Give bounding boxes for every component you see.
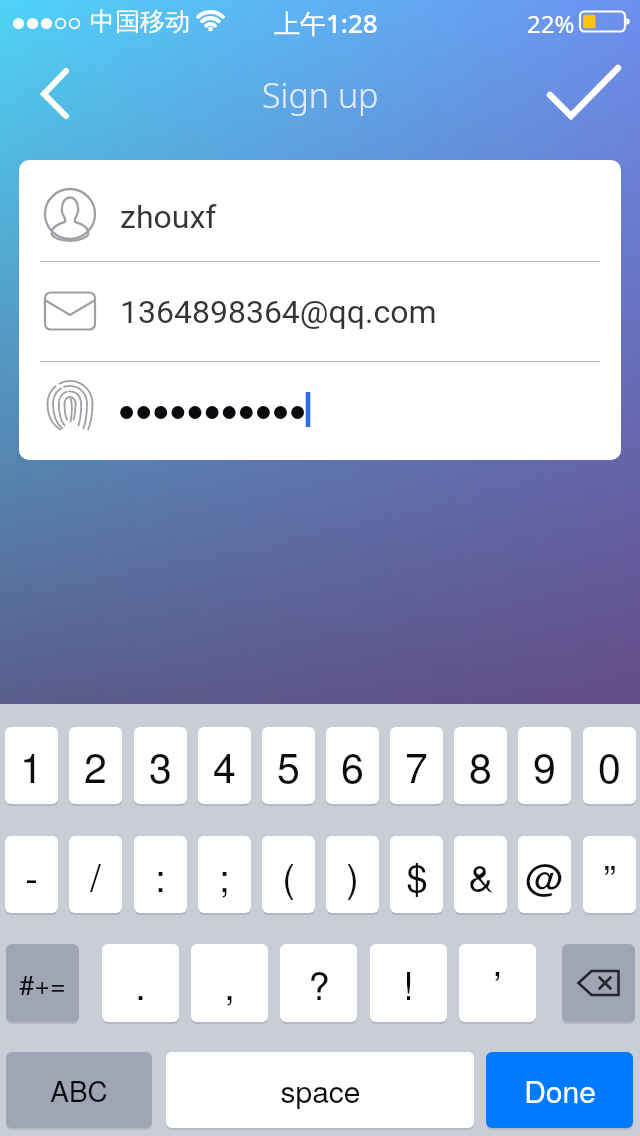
staticText: 3 — [149, 736, 172, 795]
button[interactable]: - — [5, 836, 58, 913]
button[interactable]: 5 — [262, 727, 315, 804]
staticText: 1 — [20, 736, 43, 795]
button[interactable]: Confirm — [532, 48, 632, 148]
staticText: 9 — [533, 736, 556, 795]
button[interactable]: 9 — [518, 727, 571, 804]
staticText: @ — [525, 848, 564, 902]
staticText: 2 — [84, 736, 107, 795]
button[interactable]: . — [102, 944, 179, 1022]
button[interactable]: 6 — [326, 727, 379, 804]
staticText: 0 — [598, 736, 621, 795]
button[interactable]: & — [454, 836, 507, 913]
button[interactable]: $ — [390, 836, 443, 913]
staticText: ” — [603, 848, 616, 902]
button[interactable]: ! — [370, 944, 447, 1022]
staticText: ; — [219, 848, 230, 902]
button[interactable]: ( — [262, 836, 315, 913]
staticText: 4 — [213, 736, 236, 795]
staticText: ) — [346, 848, 359, 902]
staticText: Done — [524, 1069, 596, 1112]
button[interactable]: zhouxf — [19, 160, 621, 261]
staticText: ’ — [493, 956, 502, 1010]
button[interactable]: Back — [16, 48, 92, 124]
button[interactable]: Done — [486, 1052, 633, 1128]
staticText: 1364898364@qq.com — [120, 293, 437, 331]
staticText: , — [224, 956, 235, 1010]
button[interactable]: ’ — [459, 944, 536, 1022]
button[interactable]: @ — [518, 836, 571, 913]
button[interactable] — [19, 361, 621, 460]
button[interactable]: ) — [326, 836, 379, 913]
staticText: ABC — [50, 1070, 108, 1110]
button[interactable]: 7 — [390, 727, 443, 804]
button[interactable]: ” — [583, 836, 636, 913]
button[interactable]: 4 — [198, 727, 251, 804]
staticText: #+= — [19, 964, 66, 1003]
staticText: ? — [308, 956, 330, 1010]
button[interactable]: 2 — [69, 727, 122, 804]
button[interactable]: 1 — [5, 727, 58, 804]
button[interactable]: , — [191, 944, 268, 1022]
button[interactable]: 3 — [134, 727, 187, 804]
staticText: zhouxf — [120, 198, 217, 236]
staticText: 6 — [341, 736, 364, 795]
staticText: 上午1:28 — [274, 5, 378, 41]
staticText: : — [155, 848, 166, 902]
button[interactable]: Delete — [562, 944, 635, 1022]
staticText: ! — [403, 956, 414, 1010]
staticText: 中国移动 — [90, 6, 190, 37]
button[interactable]: ABC — [6, 1052, 152, 1128]
button[interactable]: ; — [198, 836, 251, 913]
button[interactable]: space — [166, 1052, 474, 1128]
button[interactable]: 8 — [454, 727, 507, 804]
staticText: 7 — [405, 736, 428, 795]
button[interactable]: #+= — [6, 944, 79, 1022]
staticText: $ — [406, 848, 428, 902]
staticText: & — [468, 848, 494, 902]
button[interactable]: ? — [280, 944, 357, 1022]
button[interactable]: 1364898364@qq.com — [19, 261, 621, 361]
staticText: . — [135, 956, 146, 1010]
staticText: - — [25, 848, 38, 902]
staticText: / — [90, 848, 101, 902]
button[interactable]: : — [134, 836, 187, 913]
staticText: 5 — [277, 736, 300, 795]
staticText: ( — [282, 848, 295, 902]
staticText: Sign up — [262, 72, 379, 118]
button[interactable]: / — [69, 836, 122, 913]
staticText: space — [280, 1069, 361, 1112]
button[interactable]: 0 — [583, 727, 636, 804]
staticText: 22% — [527, 7, 575, 40]
staticText: 8 — [469, 736, 492, 795]
